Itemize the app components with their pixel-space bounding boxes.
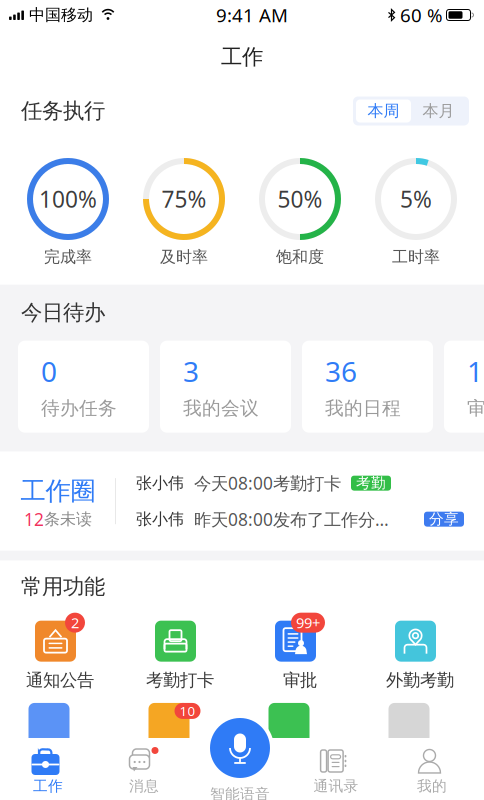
button[interactable]: 工作 xyxy=(0,738,96,797)
staticText: 审批 xyxy=(467,397,484,420)
staticText: 今天08:00考勤打卡 xyxy=(194,472,341,495)
staticText: 张小伟 xyxy=(136,509,184,529)
button[interactable]: 本周 xyxy=(356,99,411,122)
staticText: 9:41 AM xyxy=(216,3,288,27)
staticText: 60 % xyxy=(400,3,443,27)
staticText: 99+ xyxy=(296,613,320,632)
button[interactable]: 36 xyxy=(302,341,433,433)
staticText: 及时率 xyxy=(160,247,208,267)
staticText: 50% xyxy=(277,184,322,214)
staticText: 审批 xyxy=(283,670,317,691)
staticText: 工作圈 xyxy=(20,476,95,507)
staticText: 条未读 xyxy=(44,509,92,529)
staticText: 分享 xyxy=(429,510,459,528)
staticText: 待办任务 xyxy=(41,397,117,420)
staticText: 工作 xyxy=(33,777,63,795)
staticText: 36 xyxy=(325,353,357,390)
staticText: 中国移动 xyxy=(29,5,93,25)
staticText: 完成率 xyxy=(44,247,92,267)
staticText: 100% xyxy=(39,184,97,214)
staticText: 我的 xyxy=(417,777,447,795)
staticText: 我的会议 xyxy=(183,397,259,420)
button[interactable]: 通讯录 xyxy=(288,738,384,797)
staticText: 智能语音 xyxy=(210,785,270,800)
button[interactable]: 0 xyxy=(18,341,149,433)
staticText: 通知公告 xyxy=(26,670,94,691)
button[interactable]: 智能语音 xyxy=(192,714,288,800)
button[interactable]: 工作圈 xyxy=(0,452,484,551)
staticText: 任务执行 xyxy=(21,98,105,124)
staticText: 1 xyxy=(467,353,483,390)
staticText: 通讯录 xyxy=(313,777,358,795)
button[interactable]: 2 xyxy=(0,613,120,691)
button[interactable]: 我的 xyxy=(384,738,480,797)
staticText: 2 xyxy=(71,613,79,632)
button[interactable] xyxy=(0,703,120,744)
button[interactable] xyxy=(240,703,360,744)
staticText: 饱和度 xyxy=(276,247,324,267)
button[interactable]: 考勤打卡 xyxy=(120,613,240,691)
staticText: 12 xyxy=(24,508,44,531)
staticText: 我的日程 xyxy=(325,397,401,420)
staticText: 3 xyxy=(183,353,199,390)
staticText: 消息 xyxy=(129,777,159,795)
button[interactable]: 1 xyxy=(444,341,484,433)
button[interactable]: 本月 xyxy=(411,99,466,122)
staticText: 10 xyxy=(179,702,195,720)
staticText: 今日待办 xyxy=(21,300,105,326)
staticText: 本周 xyxy=(367,101,399,121)
button[interactable]: 3 xyxy=(160,341,291,433)
button[interactable] xyxy=(360,703,480,744)
staticText: 75% xyxy=(161,184,206,214)
staticText: 昨天08:00发布了工作分… xyxy=(194,508,389,531)
staticText: 考勤打卡 xyxy=(146,670,214,691)
staticText: 0 xyxy=(41,353,57,390)
staticText: 考勤 xyxy=(356,474,386,492)
staticText: 工作 xyxy=(221,44,263,70)
button[interactable]: 99+ xyxy=(240,613,360,691)
staticText: 外勤考勤 xyxy=(386,670,454,691)
staticText: 张小伟 xyxy=(136,473,184,493)
button[interactable]: 10 xyxy=(120,703,240,744)
button[interactable]: 外勤考勤 xyxy=(360,613,480,691)
staticText: 工时率 xyxy=(392,247,440,267)
staticText: 本月 xyxy=(422,101,454,121)
staticText: 5% xyxy=(400,184,432,214)
button[interactable]: 消息 xyxy=(96,738,192,797)
staticText: 常用功能 xyxy=(21,574,105,600)
